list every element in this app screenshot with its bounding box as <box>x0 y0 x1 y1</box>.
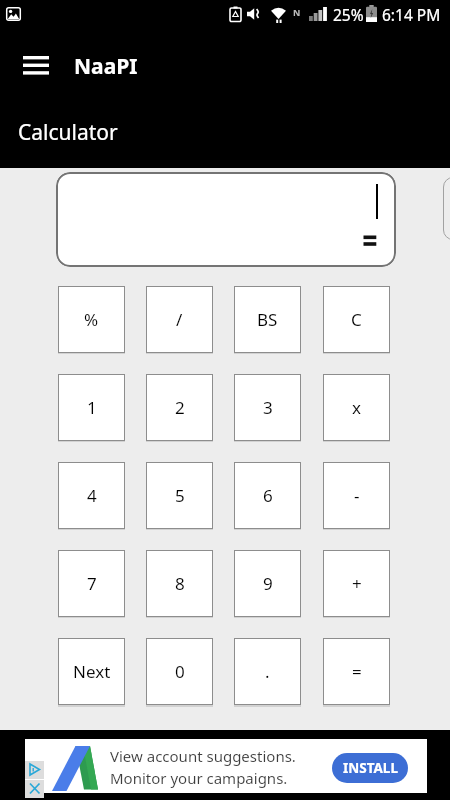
staticText: x <box>352 396 361 419</box>
staticText: 9 <box>263 572 273 595</box>
button[interactable]: 6 <box>234 462 301 529</box>
button[interactable]: / <box>146 286 213 353</box>
button[interactable]: 4 <box>58 462 125 529</box>
button[interactable] <box>56 172 396 267</box>
button[interactable] <box>25 761 44 779</box>
staticText: - <box>354 484 360 507</box>
staticText: 25% <box>333 4 364 25</box>
staticText: BS <box>257 308 278 331</box>
staticText: 0 <box>175 660 185 683</box>
staticText: 4 <box>87 484 97 507</box>
staticText: 6:14 PM <box>382 4 441 25</box>
staticText: Next <box>73 660 111 683</box>
staticText: C <box>351 308 362 331</box>
button[interactable]: - <box>323 462 390 529</box>
button[interactable] <box>25 780 44 798</box>
staticText: 8 <box>175 572 185 595</box>
button[interactable]: Next <box>58 638 125 705</box>
staticText: NaaPI <box>74 52 138 81</box>
button[interactable]: BS <box>234 286 301 353</box>
staticText: 2 <box>175 396 185 419</box>
staticText: Calculator <box>18 118 118 147</box>
button[interactable]: 3 <box>234 374 301 441</box>
button[interactable]: 2 <box>146 374 213 441</box>
staticText: INSTALL <box>343 759 398 777</box>
button[interactable]: 7 <box>58 550 125 617</box>
staticText: N <box>293 6 301 18</box>
button[interactable]: INSTALL <box>332 753 408 783</box>
button[interactable]: = <box>323 638 390 705</box>
button[interactable]: 1 <box>58 374 125 441</box>
staticText: / <box>176 308 183 331</box>
staticText: = <box>352 660 362 683</box>
button[interactable] <box>16 49 56 82</box>
button[interactable]: + <box>323 550 390 617</box>
staticText: View account suggestions. <box>110 746 296 766</box>
staticText: 3 <box>263 396 273 419</box>
button[interactable]: 9 <box>234 550 301 617</box>
staticText: 5 <box>175 484 185 507</box>
button[interactable]: 0 <box>146 638 213 705</box>
staticText: + <box>352 572 362 595</box>
staticText: . <box>265 660 270 683</box>
button[interactable]: C <box>323 286 390 353</box>
staticText: 6 <box>263 484 273 507</box>
button[interactable]: . <box>234 638 301 705</box>
staticText: % <box>84 308 99 331</box>
staticText: 7 <box>87 572 97 595</box>
staticText: 1 <box>87 396 97 419</box>
button[interactable]: % <box>58 286 125 353</box>
button[interactable]: 5 <box>146 462 213 529</box>
button[interactable]: 8 <box>146 550 213 617</box>
button[interactable]: x <box>323 374 390 441</box>
staticText: Monitor your campaigns. <box>110 768 288 788</box>
